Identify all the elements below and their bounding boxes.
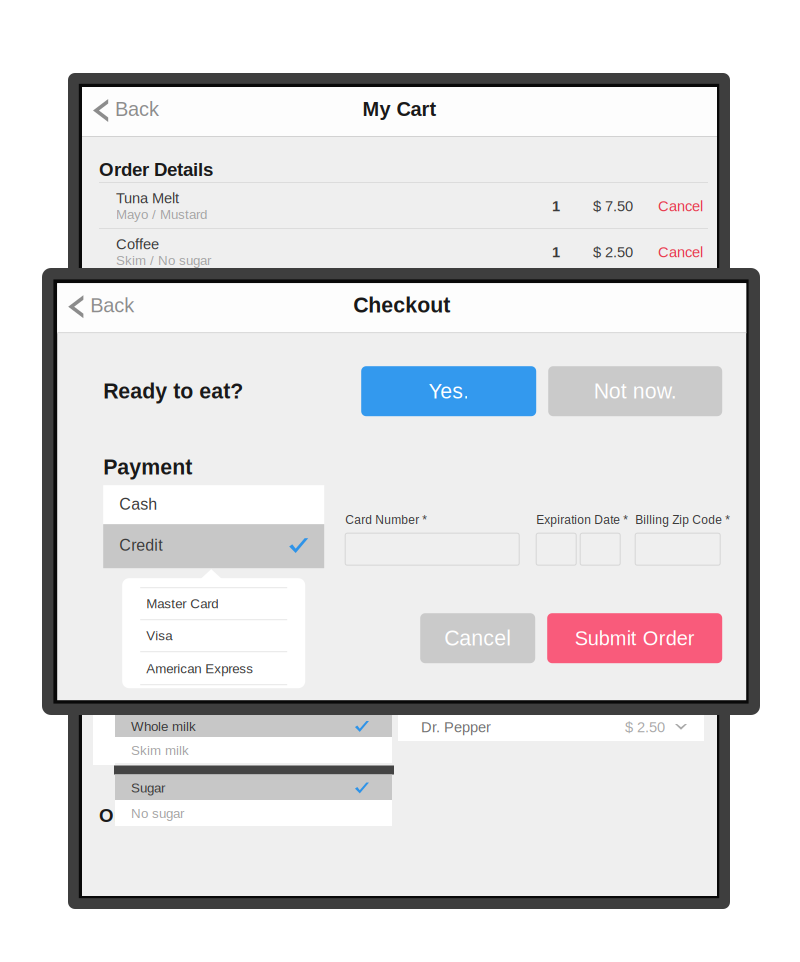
button[interactable]: Cancel [420,613,535,663]
button[interactable]: Tuna Melt [82,183,717,229]
staticText: Card Number * [345,513,427,527]
staticText: Dr. Pepper [116,290,186,306]
staticText: American Express [146,661,253,676]
button[interactable]: Cash [103,485,324,524]
staticText: Master Card [146,596,218,611]
staticText: Cancel [658,198,703,214]
button[interactable]: Whole milk [115,713,392,739]
staticText: Ready to eat? [103,379,243,403]
staticText: Order Total [99,805,196,826]
button[interactable]: Credit [103,524,324,568]
staticText: Payment [103,455,192,479]
staticText: 1 [552,198,560,214]
staticText: No sugar [131,806,184,821]
button[interactable]: Sugar [115,774,392,800]
staticText: Skim / No sugar [116,253,211,268]
staticText: $ 2.50 [625,719,665,735]
staticText: Yes. [428,379,469,403]
staticText: Checkout [353,293,450,317]
staticText: Mayo / Mustard [116,207,207,222]
staticText: Cash [119,495,157,513]
button[interactable]: Dr. Pepper [82,275,717,321]
button[interactable]: Yes. [361,366,536,416]
staticText: Sugar [131,780,165,795]
staticText: Coffee [116,236,159,252]
button[interactable]: Not now. [548,366,722,416]
button[interactable]: Text field [345,533,519,565]
staticText: $ 7.50 [593,198,633,214]
staticText: Whole milk [131,719,196,734]
staticText: Back [90,294,134,316]
button[interactable]: Back [57,283,152,333]
staticText: Order Details [99,159,213,180]
staticText: Back [115,98,159,120]
button[interactable]: No sugar [115,800,392,826]
button[interactable]: Master Card [122,587,305,620]
staticText: Cancel [444,626,511,650]
staticText: Not now. [594,379,677,403]
staticText: Cancel [658,244,703,260]
staticText: $ 2.50 [593,244,633,260]
staticText: 1 [552,244,560,260]
staticText: Skim milk [131,743,189,758]
button[interactable]: Skim milk [115,737,392,763]
staticText: Tuna Melt [116,190,179,206]
button[interactable]: Text field [536,533,576,565]
staticText: Credit [119,536,162,554]
staticText: Billing Zip Code * [635,513,730,527]
button[interactable]: Back [82,87,177,137]
button[interactable]: Coffee [82,229,717,275]
button[interactable]: Submit Order [547,613,722,663]
staticText: My Cart [362,98,436,120]
staticText: Visa [146,628,172,643]
button[interactable]: Visa [122,619,305,652]
staticText: Dr. Pepper [421,719,491,735]
button[interactable]: Text field [580,533,620,565]
button[interactable]: Text field [635,533,720,565]
button[interactable]: American Express [122,652,305,685]
staticText: Expiration Date * [536,513,628,527]
staticText: Submit Order [575,627,695,649]
